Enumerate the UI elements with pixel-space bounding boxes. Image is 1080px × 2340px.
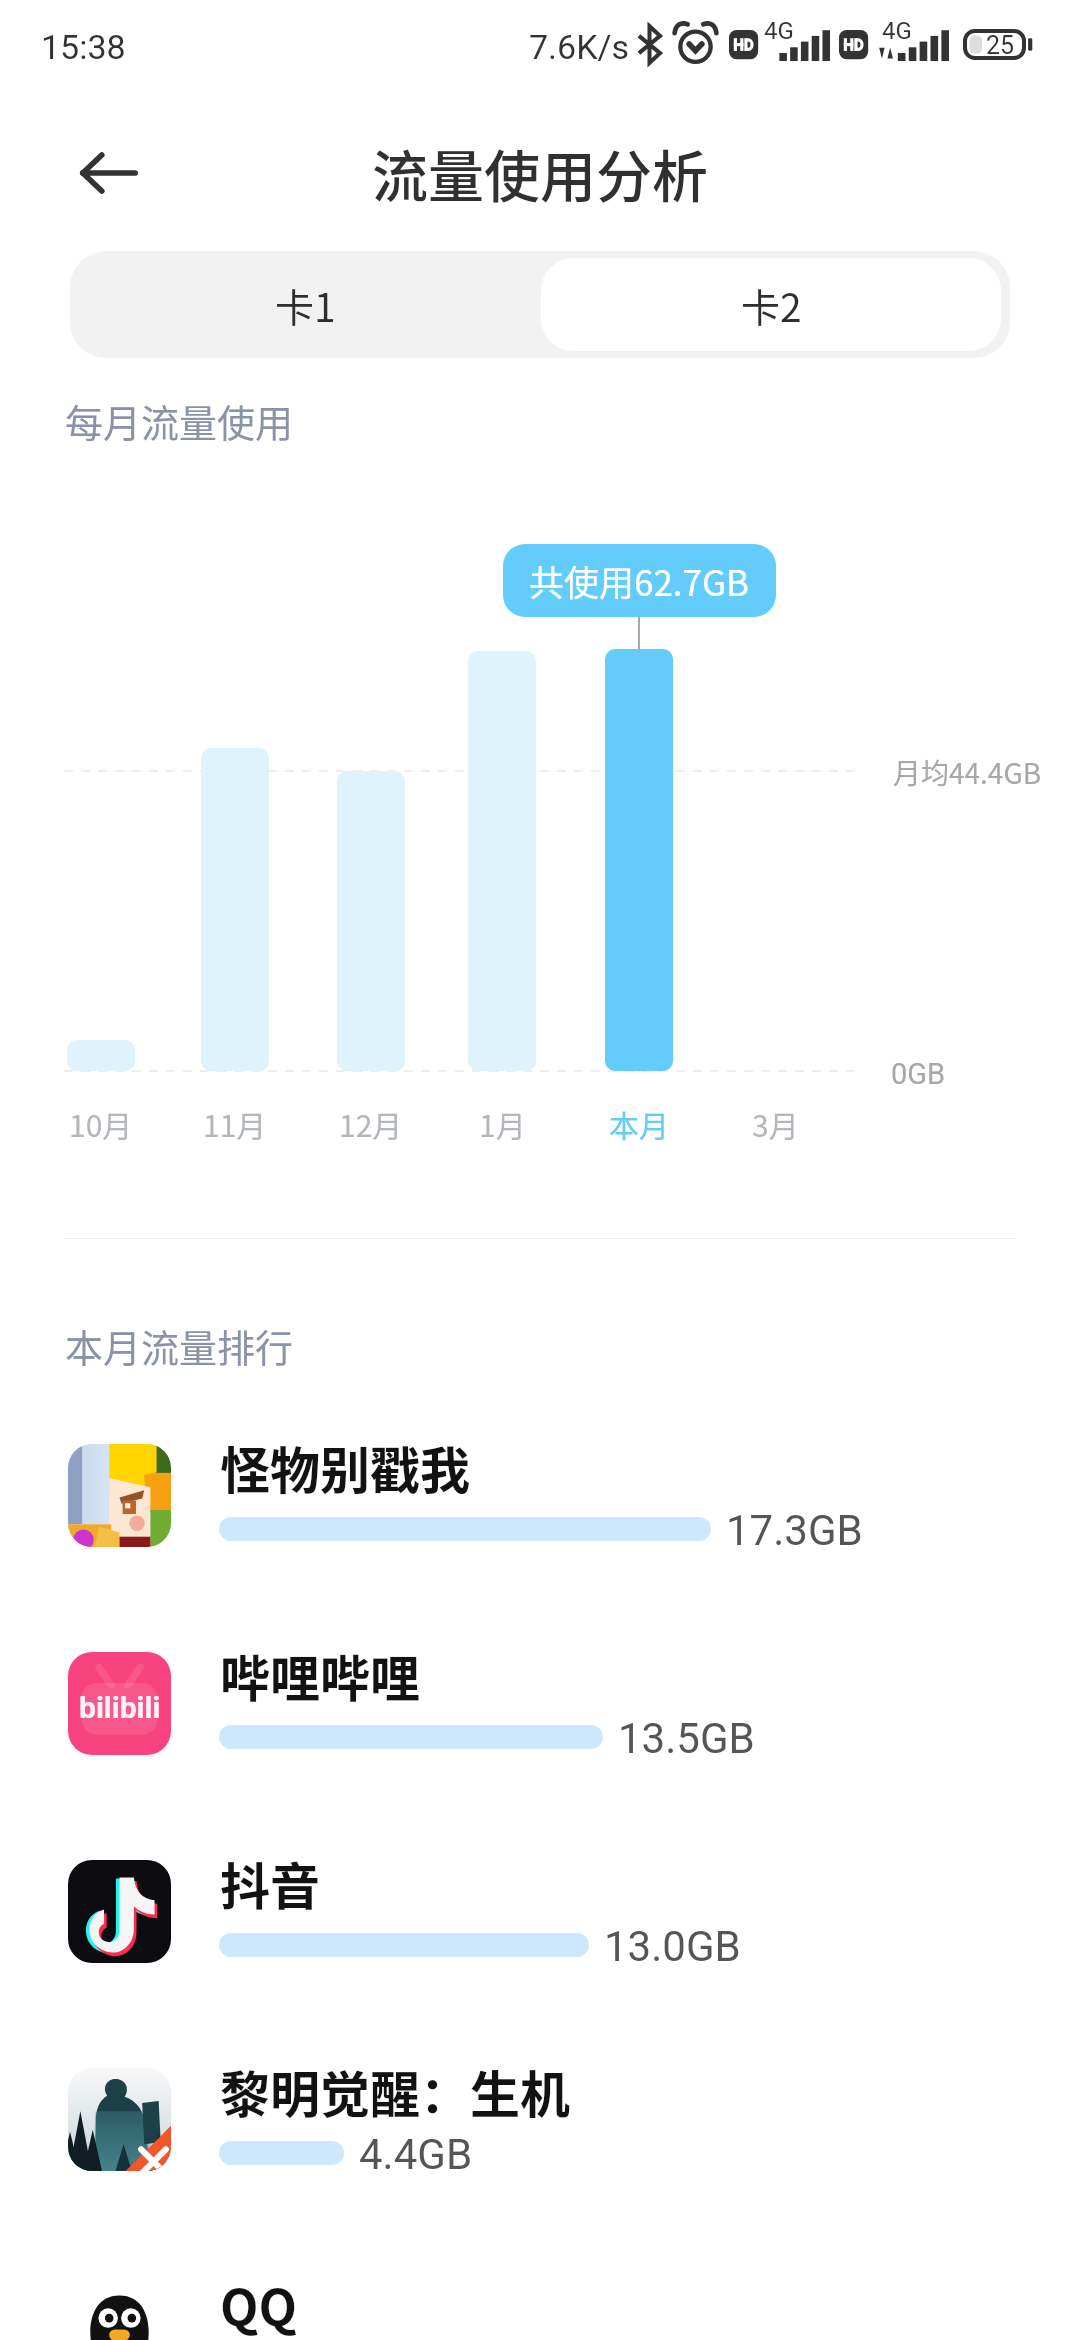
staticText: 12月 bbox=[339, 1102, 403, 1145]
staticText: 0GB bbox=[891, 1057, 946, 1091]
staticText: 10月 bbox=[69, 1102, 133, 1145]
staticText: QQ bbox=[220, 2268, 297, 2340]
staticText: 4G bbox=[764, 17, 794, 45]
button[interactable]: Back bbox=[54, 118, 164, 228]
button[interactable]: 卡1 bbox=[70, 251, 540, 358]
button[interactable]: 抖音 bbox=[0, 1840, 1080, 1990]
button[interactable]: 怪物别戳我 bbox=[0, 1424, 1080, 1574]
staticText: 13.0GB bbox=[604, 1922, 741, 1971]
staticText: 7.6K/s bbox=[529, 27, 630, 67]
button[interactable]: bilibili bbox=[0, 1632, 1080, 1782]
staticText: 月均44.4GB bbox=[893, 752, 1042, 793]
staticText: 本月流量排行 bbox=[65, 1318, 294, 1373]
staticText: bilibili bbox=[79, 1690, 161, 1725]
staticText: 本月 bbox=[609, 1102, 669, 1145]
staticText: 卡2 bbox=[741, 277, 802, 333]
staticText: 怪物别戳我 bbox=[220, 1431, 470, 1503]
staticText: 17.3GB bbox=[726, 1506, 863, 1555]
staticText: 4.4GB bbox=[359, 2130, 473, 2179]
staticText: 每月流量使用 bbox=[65, 393, 294, 448]
staticText: 哔哩哔哩 bbox=[220, 1639, 420, 1711]
staticText: 抖音 bbox=[220, 1847, 320, 1919]
button[interactable]: 卡2 bbox=[541, 258, 1001, 351]
staticText: 黎明觉醒：生机 bbox=[220, 2055, 570, 2127]
staticText: 15:38 bbox=[41, 27, 126, 67]
staticText: 13.5GB bbox=[618, 1714, 755, 1763]
button[interactable]: QQ bbox=[0, 2261, 1080, 2340]
staticText: 25 bbox=[986, 31, 1015, 60]
staticText: 11月 bbox=[203, 1102, 267, 1145]
staticText: 1月 bbox=[479, 1102, 526, 1145]
button[interactable]: 黎明觉醒：生机 bbox=[0, 2048, 1080, 2198]
staticText: 流量使用分析 bbox=[372, 132, 708, 213]
staticText: 共使用62.7GB bbox=[529, 555, 750, 606]
staticText: 4G bbox=[882, 17, 912, 45]
staticText: 卡1 bbox=[275, 277, 336, 333]
staticText: 3月 bbox=[752, 1102, 799, 1145]
